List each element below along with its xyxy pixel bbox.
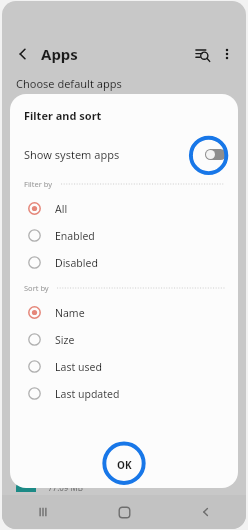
- staticText: Disabled: [55, 256, 98, 270]
- staticText: Filter and sort: [24, 108, 102, 123]
- staticText: Choose default apps: [16, 76, 122, 91]
- button[interactable]: OK: [96, 452, 152, 478]
- button[interactable]: Home: [84, 495, 165, 529]
- button[interactable]: More options: [216, 43, 238, 65]
- staticText: Last used: [55, 360, 102, 374]
- button[interactable]: Recents: [2, 495, 84, 529]
- button[interactable]: Enabled: [10, 222, 238, 249]
- button[interactable]: Size: [10, 326, 238, 353]
- staticText: Size: [55, 333, 75, 347]
- button[interactable]: Last updated: [10, 380, 238, 407]
- other: Show system apps toggle: [202, 141, 228, 167]
- staticText: All: [55, 202, 68, 216]
- staticText: Sort by: [24, 283, 49, 293]
- button[interactable]: Search apps: [190, 42, 214, 66]
- staticText: OK: [117, 458, 132, 472]
- staticText: Apps: [41, 44, 78, 64]
- button[interactable]: Disabled: [10, 249, 238, 276]
- button[interactable]: Choose default apps: [2, 71, 246, 95]
- button[interactable]: Last used: [10, 353, 238, 380]
- staticText: Enabled: [55, 229, 95, 243]
- staticText: Show system apps: [24, 147, 120, 162]
- staticText: Filter by: [24, 179, 53, 189]
- staticText: Last updated: [55, 387, 120, 401]
- staticText: Name: [55, 306, 85, 320]
- button[interactable]: Show system apps: [10, 139, 238, 169]
- button[interactable]: Back: [12, 43, 34, 65]
- button[interactable]: Name: [10, 299, 238, 326]
- button[interactable]: Back: [165, 495, 246, 529]
- button[interactable]: All: [10, 195, 238, 222]
- staticText: 77.09 MB: [48, 482, 83, 493]
